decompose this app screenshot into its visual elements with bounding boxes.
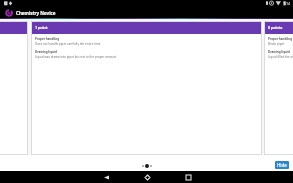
staticText: 1 point <box>35 25 48 30</box>
staticText: Hide <box>277 162 287 168</box>
staticText: Broke pipet <box>268 42 285 46</box>
staticText: Drawing liquid <box>35 50 57 54</box>
button[interactable]: Back <box>98 171 114 183</box>
button[interactable]: 1 point <box>31 21 262 155</box>
button[interactable] <box>0 21 28 155</box>
button[interactable]: Hide <box>275 161 289 169</box>
staticText: Proper handling <box>268 37 293 41</box>
staticText: Liquid was drawn into pipet but not to t… <box>35 55 117 59</box>
button[interactable]: Home <box>139 171 155 183</box>
staticText: 1:14 <box>283 1 291 6</box>
staticText: Proper handling <box>35 37 60 41</box>
staticText: Liquid filled the entire pipet <box>268 55 293 59</box>
button[interactable]: Recent apps <box>180 171 196 183</box>
staticText: Drawing liquid <box>268 50 290 54</box>
button[interactable]: 0 points <box>264 21 293 155</box>
staticText: Does not handle pipet carefully the enti… <box>35 42 101 46</box>
staticText: 0 points <box>268 25 283 30</box>
staticText: Chemistry Novice <box>16 10 56 16</box>
